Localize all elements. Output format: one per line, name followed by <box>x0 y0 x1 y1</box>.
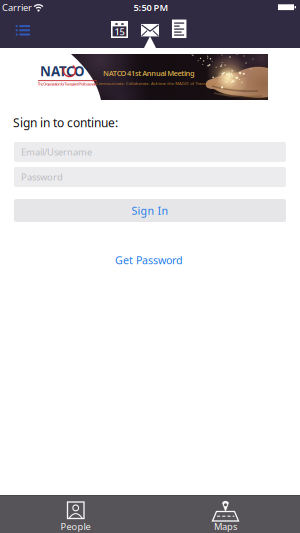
button[interactable]: People <box>0 495 150 533</box>
staticText: Sign In <box>131 203 168 218</box>
staticText: NATCO 41st Annual Meeting <box>75 65 223 81</box>
staticText: Email/Username <box>21 146 92 158</box>
button[interactable]: Maps <box>150 495 300 533</box>
button[interactable]: Email/Username <box>14 142 286 162</box>
staticText: Get Password <box>115 253 183 267</box>
button[interactable]: Password <box>14 167 286 187</box>
staticText: Sign in to continue: <box>13 114 118 130</box>
staticText: Password <box>21 171 63 183</box>
staticText: People <box>60 520 90 533</box>
button[interactable]: Messages <box>137 20 163 40</box>
button[interactable]: Menu <box>11 20 35 41</box>
button[interactable]: Sign In <box>14 199 286 222</box>
button[interactable]: Calendar <box>107 17 132 42</box>
staticText: The Organization for Transplant Professi… <box>0 76 159 92</box>
button[interactable]: News <box>168 16 190 42</box>
staticText: 15 <box>114 25 124 38</box>
staticText: 5:50 PM <box>133 1 168 14</box>
staticText: Carrier <box>2 1 32 14</box>
staticText: NATCO <box>40 62 85 80</box>
button[interactable]: Get Password <box>89 251 209 269</box>
button[interactable]: NATCO 41st Annual Meeting banner <box>0 48 300 100</box>
staticText: Communicate. Collaborate. Achieve the MA… <box>0 76 300 91</box>
staticText: Maps <box>214 520 237 533</box>
